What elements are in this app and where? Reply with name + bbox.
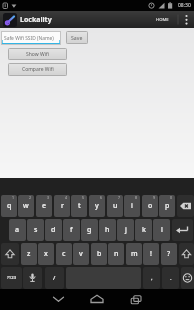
staticText: y	[95, 201, 99, 211]
staticText: 08:30	[178, 2, 191, 9]
button[interactable]: w	[18, 195, 34, 217]
staticText: z	[27, 249, 31, 259]
button[interactable]: q	[1, 195, 17, 217]
staticText: p	[165, 201, 170, 211]
button[interactable]: Save	[66, 31, 88, 44]
staticText: /	[53, 274, 56, 282]
button[interactable]: b	[91, 243, 107, 265]
button[interactable]: !	[143, 243, 159, 265]
button[interactable]: u	[107, 195, 123, 217]
button[interactable]: y	[89, 195, 105, 217]
staticText: 4	[65, 195, 68, 200]
staticText: 8	[135, 195, 138, 200]
staticText: n	[114, 249, 119, 259]
staticText: e	[42, 201, 47, 211]
button[interactable]: t	[71, 195, 87, 217]
button[interactable]: p	[159, 195, 175, 217]
staticText: 0	[170, 195, 173, 200]
staticText: k	[142, 225, 146, 235]
button[interactable]: Safe Wifi SSID (Name)	[1, 31, 61, 45]
staticText: 5	[82, 195, 85, 200]
staticText: 9	[153, 195, 156, 200]
staticText: Compare Wifi	[22, 66, 54, 73]
staticText: ?123	[7, 275, 17, 281]
staticText: .	[170, 274, 172, 282]
staticText: Show Wifi	[26, 51, 49, 58]
button[interactable]: v	[73, 243, 89, 265]
button[interactable]: ,	[143, 267, 160, 289]
staticText: t	[78, 201, 81, 211]
button[interactable]	[179, 243, 194, 265]
button[interactable]: x	[38, 243, 54, 265]
staticText: w	[23, 201, 29, 211]
staticText: 2	[29, 195, 32, 200]
staticText: c	[62, 249, 66, 259]
staticText: g	[87, 225, 92, 235]
button[interactable]: d	[45, 219, 62, 241]
button[interactable]	[1, 243, 19, 265]
staticText: f	[70, 225, 73, 235]
staticText: l	[161, 225, 163, 235]
staticText: d	[51, 225, 56, 235]
staticText: m	[131, 249, 138, 259]
button[interactable]	[181, 267, 194, 289]
staticText: o	[148, 201, 153, 211]
button[interactable]: g	[81, 219, 98, 241]
button[interactable]	[82, 289, 112, 310]
button[interactable]: f	[63, 219, 80, 241]
staticText: 1	[12, 195, 15, 200]
staticText: q	[7, 201, 12, 211]
staticText: 7	[118, 195, 121, 200]
button[interactable]	[23, 267, 42, 289]
button[interactable]	[44, 289, 74, 310]
staticText: i	[131, 201, 133, 211]
staticText: !	[150, 249, 152, 259]
staticText: Lockality	[20, 15, 52, 25]
staticText: b	[97, 249, 102, 259]
button[interactable]: e	[36, 195, 52, 217]
button[interactable]: j	[117, 219, 134, 241]
staticText: r	[61, 201, 64, 211]
button[interactable]: c	[56, 243, 72, 265]
button[interactable]	[177, 195, 194, 217]
button[interactable]: n	[108, 243, 124, 265]
button[interactable]: Show Wifi	[8, 48, 67, 60]
button[interactable]: .	[162, 267, 179, 289]
staticText: v	[79, 249, 83, 259]
staticText: u	[113, 201, 118, 211]
button[interactable]: r	[54, 195, 70, 217]
staticText: j	[125, 225, 127, 235]
button[interactable]: i	[124, 195, 140, 217]
staticText: ,	[151, 274, 153, 282]
button[interactable]	[172, 219, 193, 241]
staticText: x	[44, 249, 48, 259]
staticText: ?	[167, 249, 171, 259]
button[interactable]	[179, 11, 194, 28]
button[interactable]: k	[135, 219, 152, 241]
button[interactable]: h	[99, 219, 116, 241]
button[interactable]: ?	[161, 243, 177, 265]
staticText: a	[15, 225, 20, 235]
button[interactable]: /	[45, 267, 64, 289]
button[interactable]: s	[27, 219, 44, 241]
staticText: Safe Wifi SSID (Name)	[4, 35, 54, 42]
staticText: 6	[100, 195, 103, 200]
button[interactable]: ?123	[1, 267, 22, 289]
staticText: Save	[71, 34, 83, 41]
staticText: 3	[47, 195, 50, 200]
staticText: HOME	[156, 17, 169, 23]
staticText: s	[34, 225, 38, 235]
button[interactable]: m	[126, 243, 142, 265]
button[interactable]: a	[9, 219, 26, 241]
button[interactable]: HOME	[148, 11, 177, 28]
button[interactable]	[121, 289, 151, 310]
button[interactable]: Compare Wifi	[8, 63, 67, 76]
staticText: h	[105, 225, 110, 235]
button[interactable]: o	[142, 195, 158, 217]
button[interactable]: l	[153, 219, 170, 241]
button[interactable]: z	[21, 243, 37, 265]
